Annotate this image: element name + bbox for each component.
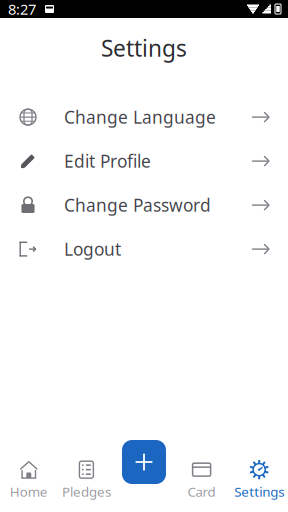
staticText: Pledges [62, 483, 111, 500]
button[interactable]: Change Password [0, 183, 288, 227]
staticText: Settings [101, 33, 187, 63]
staticText: Home [10, 483, 48, 500]
staticText: Card [188, 483, 216, 500]
staticText: Logout [64, 238, 121, 261]
button[interactable]: Change Language [0, 95, 288, 139]
staticText: Edit Profile [64, 150, 151, 173]
button[interactable]: Settings [230, 456, 288, 504]
button[interactable]: Card [173, 456, 230, 504]
button[interactable]: Edit Profile [0, 139, 288, 183]
button[interactable]: Logout [0, 227, 288, 271]
staticText: Settings [234, 483, 284, 500]
staticText: Change Password [64, 194, 211, 217]
staticText: 8:27 [8, 0, 36, 19]
button[interactable]: Pledges [58, 456, 115, 504]
staticText: Change Language [64, 106, 216, 129]
button[interactable]: Home [0, 456, 58, 504]
button[interactable]: Add [122, 440, 166, 484]
